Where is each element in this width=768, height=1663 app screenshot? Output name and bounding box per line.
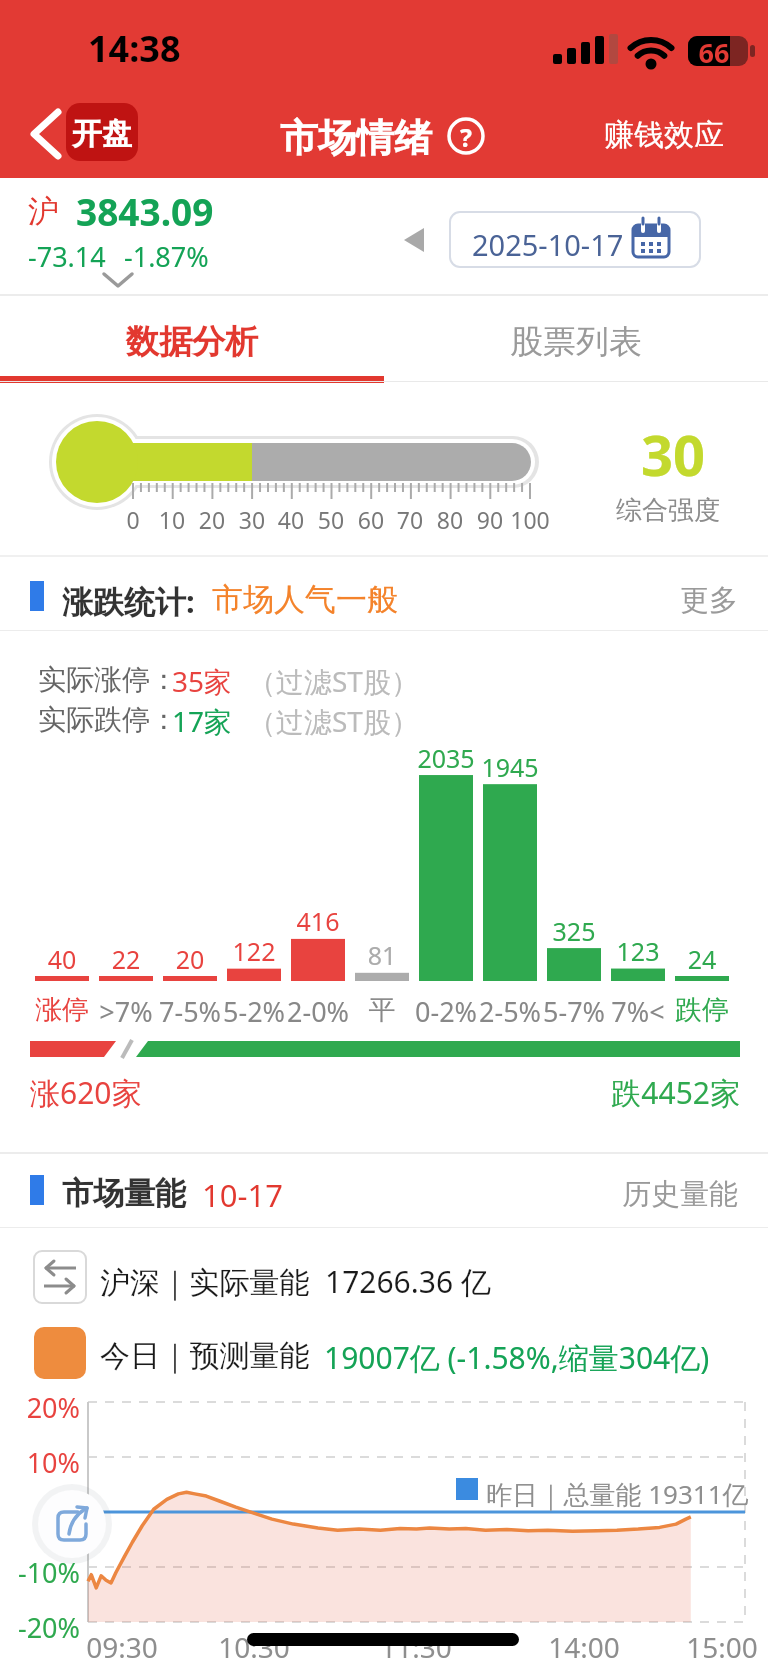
staticText: 市场情绪 xyxy=(280,114,432,162)
staticText: 35家 xyxy=(172,662,233,700)
staticText: 100 xyxy=(505,504,555,535)
staticText: 沪深｜实际量能 17266.36 亿 xyxy=(100,1261,491,1302)
staticText: 90 xyxy=(465,504,515,535)
button[interactable]: 2025-10-17 xyxy=(450,212,700,267)
staticText: 20 xyxy=(150,942,230,976)
staticText: 20% xyxy=(8,1389,80,1426)
staticText: 14:38 xyxy=(88,24,181,73)
staticText: （过滤ST股） xyxy=(248,662,419,700)
staticText: 66 xyxy=(690,34,738,71)
staticText: 2025-10-17 xyxy=(472,225,624,264)
staticText: 10% xyxy=(8,1444,80,1481)
staticText: 7%< xyxy=(594,993,682,1030)
staticText: -73.14 xyxy=(28,238,106,275)
staticText: 更多 xyxy=(680,582,738,619)
staticText: 实际涨停： xyxy=(38,662,178,697)
staticText: 10 xyxy=(147,504,197,535)
staticText: 70 xyxy=(385,504,435,535)
staticText: 122 xyxy=(214,934,294,968)
button[interactable]: 更多 xyxy=(680,580,738,617)
staticText: 涨停 xyxy=(18,993,106,1027)
staticText: 综合强度 xyxy=(616,494,720,527)
staticText: 14:00 xyxy=(539,1628,629,1663)
staticText: 10:30 xyxy=(209,1628,299,1663)
staticText: 开盘 xyxy=(70,115,134,153)
staticText: >7% xyxy=(82,993,170,1030)
staticText: （过滤ST股） xyxy=(248,702,419,740)
staticText: -1.87% xyxy=(124,238,209,275)
staticText: 40 xyxy=(266,504,316,535)
staticText: 2-0% xyxy=(274,993,362,1030)
staticText: 涨620家 xyxy=(30,1072,142,1113)
staticText: 30 xyxy=(637,416,709,492)
staticText: -20% xyxy=(8,1609,80,1646)
staticText: 赚钱效应 xyxy=(604,116,724,154)
staticText: 市场量能 xyxy=(62,1174,186,1213)
staticText: -10% xyxy=(8,1554,80,1591)
staticText: 30 xyxy=(227,504,277,535)
staticText: 昨日｜总量能 19311亿 xyxy=(486,1476,749,1512)
staticText: 10-17 xyxy=(202,1174,283,1216)
staticText: 50 xyxy=(306,504,356,535)
staticText: 09:30 xyxy=(77,1628,167,1663)
staticText: 416 xyxy=(278,904,358,938)
staticText: 22 xyxy=(86,942,166,976)
button[interactable]: 股票列表 xyxy=(384,296,768,376)
staticText: 325 xyxy=(534,914,614,948)
staticText: 80 xyxy=(425,504,475,535)
staticText: 市场人气一般 xyxy=(212,580,398,619)
button[interactable]: 数据分析 xyxy=(0,296,384,376)
staticText: 123 xyxy=(598,934,678,968)
staticText: 2-5% xyxy=(466,993,554,1030)
staticText: 跌4452家 xyxy=(590,1072,740,1113)
staticText: 81 xyxy=(342,938,422,972)
staticText: 11:30 xyxy=(371,1628,461,1663)
staticText: 24 xyxy=(662,942,742,976)
staticText: 7-5% xyxy=(146,993,234,1030)
staticText: 17家 xyxy=(172,702,233,740)
staticText: 19007亿 (-1.58%,缩量304亿) xyxy=(324,1337,710,1378)
button[interactable]: 开盘 xyxy=(66,103,138,161)
staticText: 20 xyxy=(187,504,237,535)
staticText: 数据分析 xyxy=(126,321,258,363)
staticText: 今日｜预测量能 xyxy=(100,1337,310,1375)
staticText: 2035 xyxy=(406,741,486,775)
button[interactable]: 历史量能 xyxy=(622,1174,738,1211)
staticText: 0-2% xyxy=(402,993,490,1030)
staticText: 实际跌停： xyxy=(38,702,178,737)
staticText: 15:00 xyxy=(677,1628,767,1663)
staticText: 3843.09 xyxy=(76,186,214,236)
staticText: 平 xyxy=(338,993,426,1027)
staticText: 0 xyxy=(108,504,158,535)
button[interactable] xyxy=(38,1490,106,1558)
staticText: 5-2% xyxy=(210,993,298,1030)
staticText: 沪 xyxy=(28,192,59,231)
staticText: 股票列表 xyxy=(510,321,642,363)
staticText: ? xyxy=(455,120,477,154)
staticText: 5-7% xyxy=(530,993,618,1030)
staticText: 40 xyxy=(22,942,102,976)
staticText: 涨跌统计: xyxy=(62,580,195,622)
button[interactable]: 赚钱效应 xyxy=(604,116,724,154)
staticText: 60 xyxy=(346,504,396,535)
staticText: 1945 xyxy=(470,750,550,784)
staticText: 历史量能 xyxy=(622,1176,738,1213)
staticText: 跌停 xyxy=(658,993,746,1027)
